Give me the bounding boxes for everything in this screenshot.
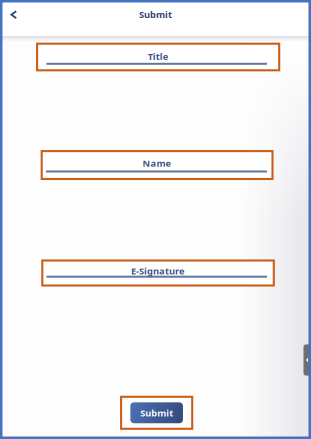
staticText: Title bbox=[148, 50, 169, 62]
staticText: Name bbox=[143, 157, 172, 169]
staticText: Submit bbox=[139, 8, 172, 21]
button[interactable]: Back bbox=[6, 7, 21, 22]
button[interactable]: Open side panel bbox=[303, 344, 310, 376]
staticText: Submit bbox=[140, 407, 173, 419]
button[interactable]: E-Signature bbox=[42, 260, 274, 285]
button[interactable]: Name bbox=[42, 151, 272, 179]
staticText: E-Signature bbox=[131, 265, 185, 277]
button[interactable]: Submit bbox=[121, 397, 192, 429]
button[interactable]: Title bbox=[37, 44, 279, 70]
